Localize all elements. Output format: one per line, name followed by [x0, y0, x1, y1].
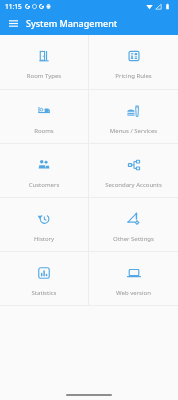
- staticText: Other Settings: [91, 235, 176, 243]
- button[interactable]: Pricing Rules: [89, 35, 178, 89]
- button[interactable]: Customers: [0, 144, 88, 197]
- staticText: Pricing Rules: [91, 72, 176, 80]
- staticText: Statistics: [2, 289, 86, 297]
- button[interactable]: Secondary Accounts: [89, 144, 178, 197]
- button[interactable]: Other Settings: [89, 198, 178, 251]
- staticText: Customers: [2, 181, 86, 189]
- button[interactable]: Open navigation menu: [0, 13, 24, 35]
- staticText: System Management: [26, 17, 118, 29]
- staticText: Menus / Services: [91, 127, 176, 135]
- button[interactable]: Statistics: [0, 252, 88, 305]
- button[interactable]: Rooms: [0, 90, 88, 143]
- staticText: Rooms: [2, 127, 86, 135]
- staticText: Web version: [91, 289, 176, 297]
- staticText: Room Types: [2, 72, 86, 80]
- button[interactable]: Room Types: [0, 35, 88, 89]
- staticText: History: [2, 235, 86, 243]
- button[interactable]: History: [0, 198, 88, 251]
- button[interactable]: Menus / Services: [89, 90, 178, 143]
- staticText: Secondary Accounts: [91, 181, 176, 189]
- staticText: 11:15: [5, 2, 22, 11]
- button[interactable]: Web version: [89, 252, 178, 305]
